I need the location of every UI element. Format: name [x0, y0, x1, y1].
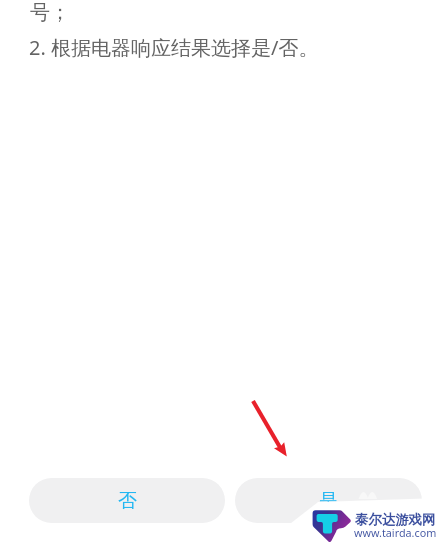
staticText: 否	[118, 489, 137, 513]
staticText: 2. 根据电器响应结果选择是/否。	[29, 34, 319, 61]
staticText: 号；	[30, 0, 70, 25]
button[interactable]: 是	[235, 478, 422, 523]
other: Annotation arrow pointing at the 是 butto…	[0, 0, 441, 546]
button[interactable]: 否	[29, 478, 225, 523]
staticText: www.tairda.com	[354, 525, 437, 540]
staticText: 是	[319, 489, 338, 513]
staticText: 泰尔达游戏网	[355, 511, 436, 528]
